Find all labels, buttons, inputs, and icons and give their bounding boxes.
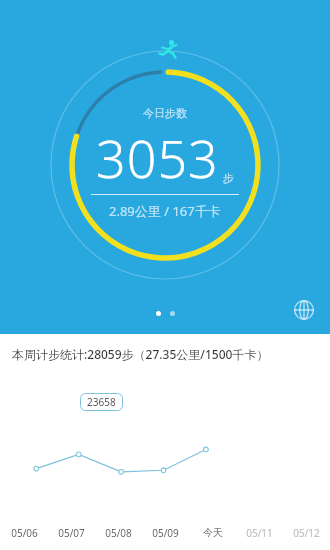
staticText: 本周计步统计:28059步（27.35公里/1500千卡） [12,346,269,362]
button[interactable]: Globe [290,296,318,324]
staticText: 今日步数 [143,106,187,120]
staticText: 今天 [203,526,223,539]
staticText: 05/11 [246,526,273,540]
staticText: 23658 [87,395,116,409]
other: Running [155,38,181,64]
staticText: 05/09 [152,526,179,540]
button[interactable]: Page 1 [156,311,161,316]
staticText: 05/07 [58,526,85,540]
button[interactable]: Today steps progress [45,45,285,285]
staticText: 3053 [96,122,219,193]
staticText: 05/12 [293,526,320,540]
button[interactable]: 23658 [80,393,123,411]
staticText: 05/08 [105,526,132,540]
button[interactable]: Page 2 [170,311,175,316]
staticText: 2.89公里 / 167千卡 [109,202,221,220]
staticText: 05/06 [11,526,38,540]
staticText: 步 [223,171,234,185]
